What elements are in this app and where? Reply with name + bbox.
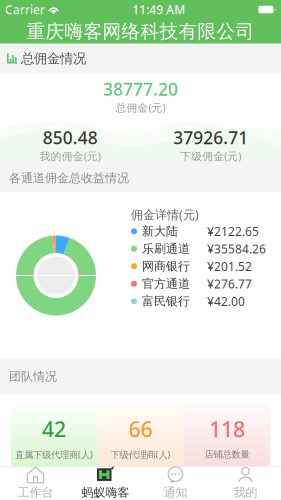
staticText: 下级佣金(元) xyxy=(180,149,241,163)
button[interactable]: 蚂蚁嗨客 xyxy=(70,466,140,500)
button[interactable]: 我的 xyxy=(210,466,280,500)
staticText: 重庆嗨客网络科技有限公司 xyxy=(26,20,254,43)
button[interactable]: 工作台 xyxy=(0,466,70,500)
staticText: ¥35584.26 xyxy=(207,241,266,257)
staticText: ¥276.77 xyxy=(207,276,252,292)
staticText: 新大陆 xyxy=(142,224,178,239)
staticText: 我的 xyxy=(233,485,257,500)
staticText: 通知 xyxy=(163,485,187,500)
staticText: 佣金详情(元) xyxy=(131,207,199,222)
staticText: 店铺总数量 xyxy=(205,449,250,460)
staticText: Carrier xyxy=(5,1,45,17)
staticText: 38777.20 xyxy=(103,77,178,100)
staticText: 我的佣金(元) xyxy=(40,149,101,163)
staticText: 工作台 xyxy=(17,485,53,500)
staticText: ¥42.00 xyxy=(207,293,245,309)
staticText: 42 xyxy=(42,415,66,443)
staticText: ¥2122.65 xyxy=(207,223,259,239)
staticText: 各通道佣金总收益情况 xyxy=(9,171,129,185)
staticText: 118 xyxy=(209,415,245,443)
staticText: 66 xyxy=(128,415,152,443)
staticText: 下级代理商(人) xyxy=(110,448,170,461)
button[interactable]: 通知 xyxy=(140,466,210,500)
staticText: 总佣金情况 xyxy=(21,50,86,67)
staticText: 直属下级代理商(人) xyxy=(15,448,93,461)
staticText: 37926.71 xyxy=(173,126,248,149)
staticText: 富民银行 xyxy=(142,294,190,309)
staticText: ¥201.52 xyxy=(207,258,252,274)
staticText: 蚂蚁嗨客 xyxy=(81,485,129,500)
staticText: 11:49 AM xyxy=(132,1,185,17)
staticText: 乐刷通道 xyxy=(142,241,190,256)
staticText: 团队情况 xyxy=(9,369,57,384)
staticText: 850.48 xyxy=(43,126,98,149)
staticText: 总佣金(元) xyxy=(115,100,165,115)
staticText: 官方通道 xyxy=(142,276,190,291)
staticText: 网商银行 xyxy=(142,259,190,274)
